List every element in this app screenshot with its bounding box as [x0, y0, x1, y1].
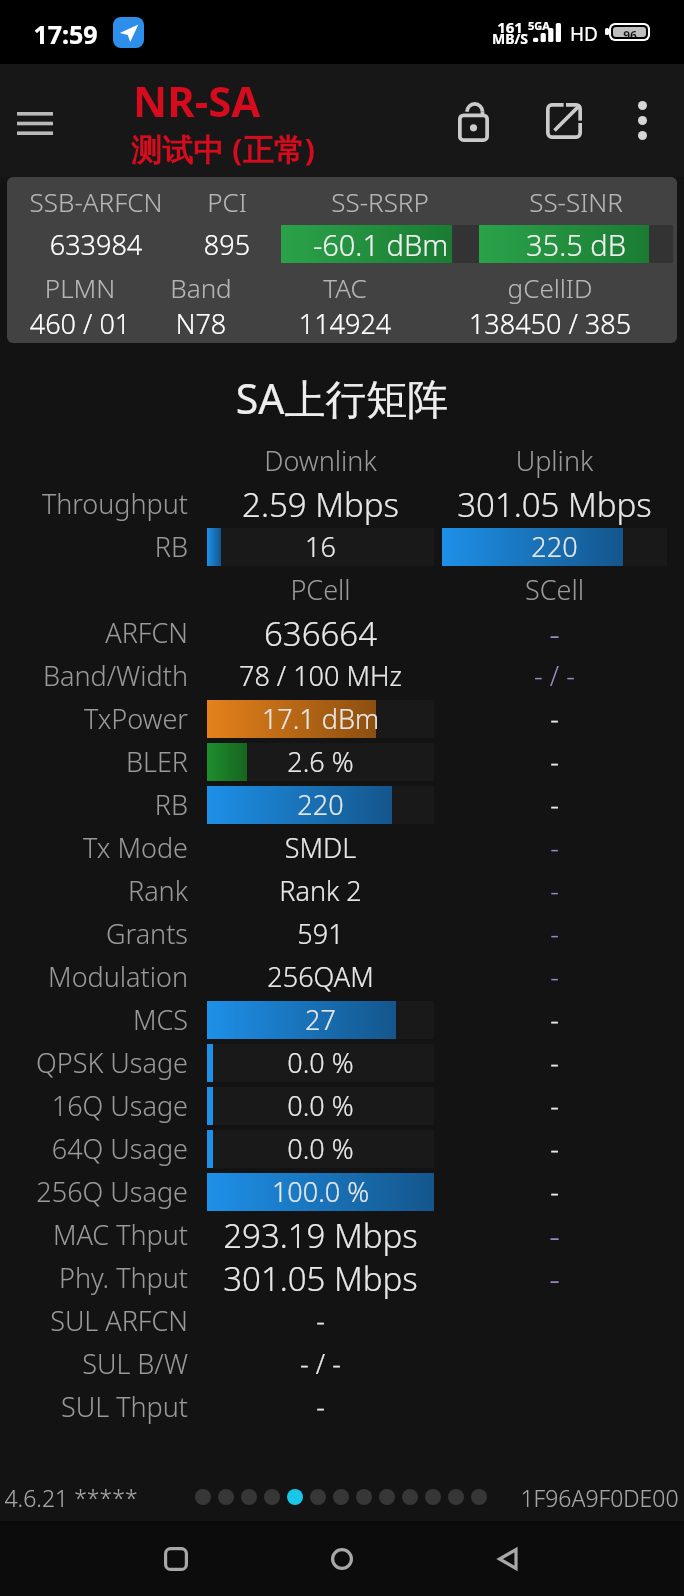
staticText: 4.6.21 *****: [4, 1482, 138, 1513]
button[interactable]: Unlock: [444, 64, 502, 177]
staticText: 17.1 dBm: [207, 700, 434, 737]
button[interactable]: [310, 1489, 326, 1505]
staticText: 293.19 Mbps: [207, 1213, 434, 1256]
staticText: -: [442, 872, 667, 909]
staticText: SS-SINR: [416, 184, 677, 219]
staticText: Modulation: [48, 958, 188, 995]
button[interactable]: Recent apps: [146, 1529, 206, 1589]
staticText: 636664: [207, 611, 434, 654]
button[interactable]: [356, 1489, 372, 1505]
button[interactable]: [287, 1489, 303, 1505]
button[interactable]: Home: [312, 1529, 372, 1589]
button[interactable]: [379, 1489, 395, 1505]
staticText: -60.1 dBm: [281, 225, 480, 263]
staticText: Band: [41, 270, 361, 305]
button[interactable]: Navigation menu: [6, 94, 64, 152]
staticText: gCellID: [390, 270, 677, 305]
staticText: Phy. Thput: [59, 1259, 188, 1296]
staticText: MCS: [132, 1001, 188, 1038]
staticText: -: [442, 1001, 667, 1038]
staticText: -: [442, 958, 667, 995]
staticText: SUL Thput: [61, 1388, 188, 1425]
staticText: SSB-ARFCN: [7, 184, 256, 219]
staticText: 0.0 %: [207, 1130, 434, 1167]
staticText: TxPower: [83, 700, 188, 737]
staticText: - / -: [442, 657, 667, 694]
staticText: 35.5 dB: [479, 225, 673, 263]
staticText: Uplink: [442, 442, 667, 479]
button[interactable]: [218, 1489, 234, 1505]
staticText: 460 / 01: [7, 305, 240, 342]
staticText: 161: [494, 17, 526, 37]
staticText: 1F96A9F0DE00: [520, 1482, 679, 1513]
staticText: 17:59: [33, 17, 98, 51]
staticText: SMDL: [207, 829, 434, 866]
staticText: -: [442, 1173, 667, 1210]
staticText: -: [442, 1213, 667, 1256]
staticText: Rank 2: [207, 872, 434, 909]
staticText: HD: [570, 21, 598, 47]
button[interactable]: Back: [477, 1529, 537, 1589]
staticText: SS-RSRP: [220, 184, 540, 219]
staticText: TAC: [185, 270, 505, 305]
staticText: SUL B/W: [82, 1345, 188, 1382]
staticText: -: [207, 1388, 434, 1425]
staticText: 64Q Usage: [51, 1130, 188, 1167]
staticText: Grants: [106, 915, 188, 952]
staticText: -: [442, 611, 667, 654]
staticText: 633984: [7, 226, 256, 263]
button[interactable]: [471, 1489, 487, 1505]
staticText: SCell: [442, 571, 667, 608]
staticText: PCell: [207, 571, 434, 608]
button[interactable]: Open externally: [535, 64, 593, 177]
staticText: QPSK Usage: [36, 1044, 188, 1081]
button[interactable]: More options: [614, 64, 670, 177]
staticText: 16: [207, 528, 434, 565]
staticText: - / -: [207, 1345, 434, 1382]
staticText: -: [442, 743, 667, 780]
button[interactable]: [402, 1489, 418, 1505]
button[interactable]: [241, 1489, 257, 1505]
button[interactable]: [195, 1489, 211, 1505]
staticText: -: [442, 700, 667, 737]
staticText: -: [442, 915, 667, 952]
staticText: BLER: [125, 743, 188, 780]
staticText: MB/S: [491, 29, 529, 48]
staticText: MAC Thput: [52, 1216, 188, 1253]
staticText: 27: [207, 1001, 434, 1038]
staticText: PCI: [67, 184, 387, 219]
staticText: Downlink: [207, 442, 434, 479]
button[interactable]: [448, 1489, 464, 1505]
staticText: -: [442, 1130, 667, 1167]
staticText: 301.05 Mbps: [207, 1256, 434, 1299]
staticText: 78 / 100 MHz: [207, 657, 434, 694]
staticText: Rank: [127, 872, 188, 909]
staticText: NR-SA: [133, 72, 261, 129]
staticText: 16Q Usage: [51, 1087, 188, 1124]
staticText: -: [442, 1256, 667, 1299]
staticText: 138450 / 385: [390, 305, 677, 342]
staticText: Band/Width: [42, 657, 188, 694]
staticText: 0.0 %: [207, 1044, 434, 1081]
button[interactable]: [264, 1489, 280, 1505]
button[interactable]: [333, 1489, 349, 1505]
staticText: RB: [154, 528, 188, 565]
staticText: 96: [623, 27, 637, 37]
button[interactable]: [425, 1489, 441, 1505]
staticText: 591: [207, 915, 434, 952]
staticText: RB: [154, 786, 188, 823]
staticText: -: [442, 829, 667, 866]
staticText: 2.6 %: [207, 743, 434, 780]
staticText: 256QAM: [207, 958, 434, 995]
staticText: ARFCN: [105, 614, 188, 651]
staticText: Tx Mode: [83, 829, 188, 866]
staticText: -: [442, 1044, 667, 1081]
staticText: 100.0 %: [207, 1173, 434, 1210]
staticText: SUL ARFCN: [50, 1302, 188, 1339]
staticText: -: [442, 1087, 667, 1124]
staticText: 220: [442, 528, 667, 565]
staticText: 0.0 %: [207, 1087, 434, 1124]
staticText: -: [442, 786, 667, 823]
